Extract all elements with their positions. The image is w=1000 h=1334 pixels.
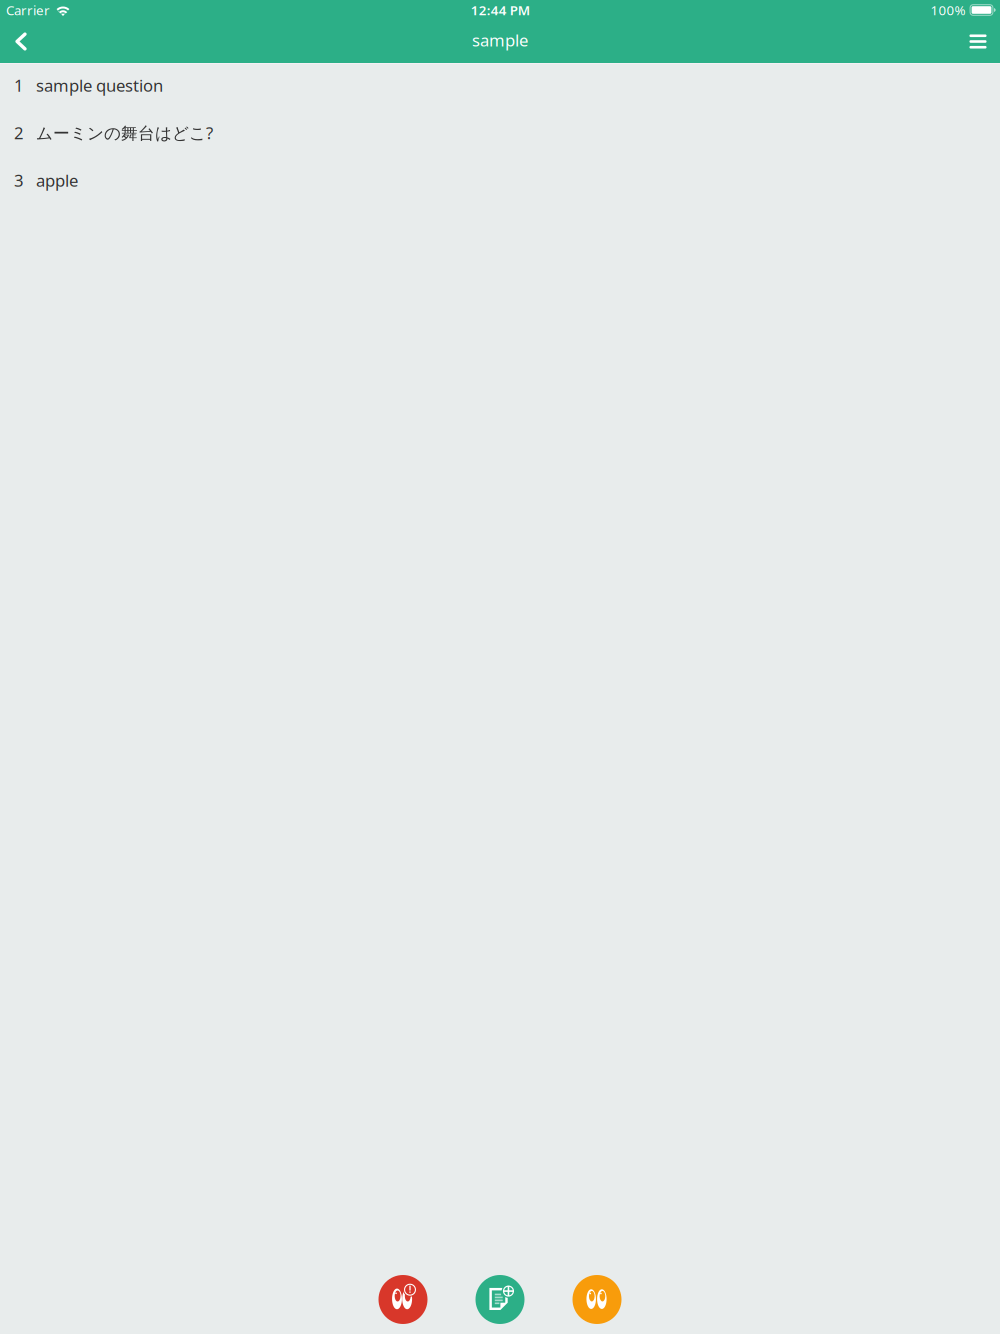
- button[interactable]: 2: [0, 109, 1000, 156]
- staticText: 2: [14, 121, 24, 144]
- button[interactable]: Menu: [956, 20, 1000, 63]
- staticText: 12:44 PM: [471, 1, 530, 19]
- staticText: ムーミンの舞台はどこ?: [36, 121, 213, 144]
- button[interactable]: Back: [0, 20, 42, 63]
- button[interactable]: 3: [0, 156, 1000, 204]
- staticText: Carrier: [6, 1, 50, 19]
- staticText: 3: [14, 169, 24, 192]
- button[interactable]: Preview: [572, 1275, 621, 1324]
- staticText: 1: [14, 74, 24, 97]
- button[interactable]: Add question: [475, 1275, 524, 1324]
- staticText: sample: [472, 29, 528, 51]
- staticText: sample question: [36, 74, 163, 97]
- button[interactable]: Report a problem: [378, 1275, 427, 1324]
- button[interactable]: 1: [0, 61, 1000, 109]
- staticText: apple: [36, 169, 78, 192]
- staticText: 100%: [931, 1, 966, 19]
